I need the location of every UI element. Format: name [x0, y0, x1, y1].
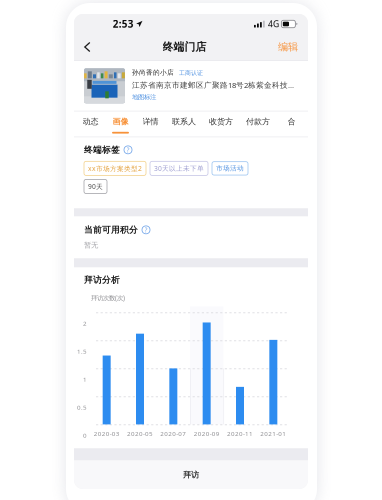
button[interactable]: 收货方 [209, 112, 233, 137]
staticText: 2 [83, 319, 87, 328]
staticText: 2:53 [113, 17, 134, 31]
staticText: 收货方 [209, 117, 233, 127]
button[interactable]: 90天 [84, 179, 107, 193]
staticText: 市场活动 [216, 164, 244, 173]
staticText: 地图标注 [132, 93, 156, 101]
staticText: 2020-09 [194, 429, 220, 438]
staticText: 0 [83, 431, 87, 440]
staticText: 动态 [82, 117, 98, 127]
staticText: 终端门店 [162, 40, 206, 54]
staticText: 4G [268, 18, 279, 30]
button[interactable]: 动态 [82, 112, 99, 137]
staticText: 暂无 [84, 240, 98, 249]
button[interactable]: 拜访 [74, 460, 308, 489]
staticText: 90天 [88, 182, 103, 191]
staticText: 2020-05 [127, 429, 153, 438]
staticText: 终端标签 [84, 144, 120, 155]
button[interactable]: 市场活动 [212, 162, 248, 175]
staticText: 合 [287, 117, 295, 127]
button[interactable]: 详情 [142, 112, 159, 137]
button[interactable]: 联系人 [172, 112, 196, 137]
staticText: 拜访分析 [84, 274, 120, 285]
staticText: ? [126, 145, 129, 154]
staticText: 拜访次数(次) [91, 293, 125, 302]
staticText: 画像 [112, 117, 128, 127]
staticText: xx市场方案类型2 [88, 164, 142, 173]
button[interactable]: 孙尚香的小店 [74, 61, 308, 111]
staticText: ? [144, 225, 147, 234]
staticText: 2020-07 [160, 429, 186, 438]
staticText: 0.5 [77, 403, 87, 412]
button[interactable]: 画像 [112, 112, 129, 137]
staticText: 2020-03 [94, 429, 120, 438]
button[interactable]: 合 [283, 112, 300, 137]
staticText: 2020-11 [227, 429, 253, 438]
staticText: 孙尚香的小店 [132, 68, 174, 77]
staticText: 付款方 [246, 117, 270, 127]
staticText: 1 [83, 375, 87, 384]
staticText: 江苏省南京市建邺区广聚路18号2栋紫金科技创… [132, 80, 299, 90]
staticText: 工商认证 [179, 69, 203, 77]
staticText: 1.5 [77, 347, 87, 356]
staticText: 编辑 [278, 41, 298, 53]
staticText: 当前可用积分 [84, 224, 138, 235]
button[interactable]: xx市场方案类型2 [84, 161, 146, 175]
staticText: 联系人 [172, 117, 196, 127]
staticText: 拜访 [183, 470, 199, 480]
staticText: 2021-01 [260, 429, 286, 438]
button[interactable]: 付款方 [246, 112, 270, 137]
staticText: 30天以上未下单 [154, 164, 204, 173]
staticText: 详情 [142, 117, 158, 127]
button[interactable]: 编辑 [270, 35, 306, 59]
button[interactable]: 30天以上未下单 [150, 161, 208, 175]
button[interactable]: Back [76, 36, 99, 58]
